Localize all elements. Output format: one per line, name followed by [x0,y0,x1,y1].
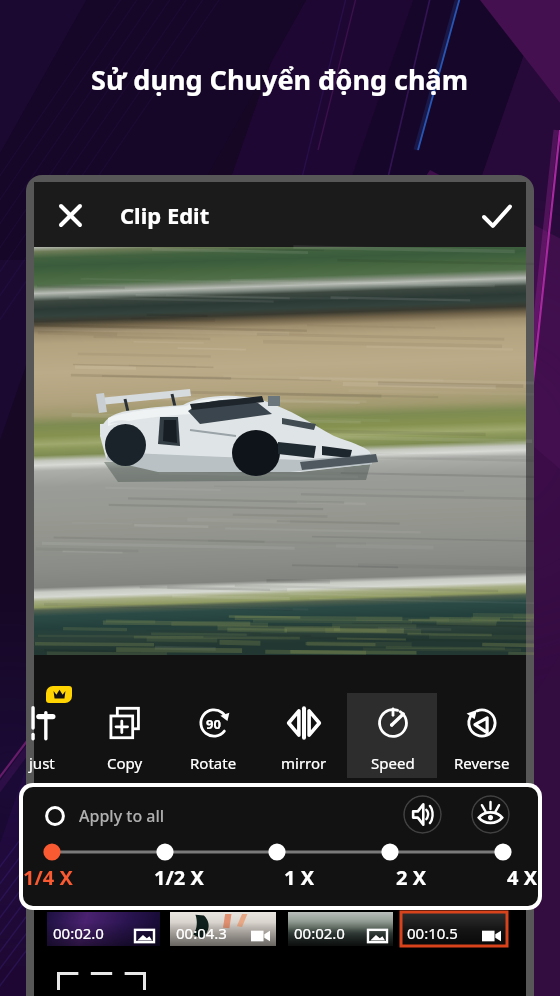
staticText: mirror [281,753,327,773]
staticText: Apply to all [79,805,165,827]
staticText: 00:04.3 [176,923,227,943]
button[interactable]: Speed [347,693,438,778]
button[interactable]: 00:02.0 [288,912,393,946]
staticText: Clip Edit [120,200,210,230]
staticText: Copy [107,753,143,773]
button[interactable]: mirror [258,693,349,778]
staticText: Rotate [190,753,237,773]
staticText: 4 X [507,864,538,891]
button[interactable]: Preview [471,795,510,834]
button[interactable]: 00:04.3 [170,912,276,946]
staticText: 00:02.0 [294,923,345,943]
button[interactable]: 00:10.5 [401,912,507,946]
staticText: 1 X [284,864,315,891]
button[interactable]: just [26,693,87,778]
button[interactable]: Copy [79,693,170,778]
staticText: 90 [206,715,221,733]
staticText: 1/4 X [23,864,73,891]
staticText: 00:02.0 [53,923,104,943]
staticText: 00:10.5 [407,923,458,943]
button[interactable]: Volume [403,795,442,834]
button[interactable]: 90 [168,693,259,778]
staticText: 2 X [396,864,427,891]
button[interactable]: 00:02.0 [47,912,160,946]
button[interactable]: Confirm [468,188,526,246]
staticText: Speed [371,753,415,773]
button[interactable]: Apply to all [45,801,165,831]
staticText: 1/2 X [154,864,204,891]
button[interactable]: Reverse [436,693,527,778]
button[interactable]: Close [44,189,96,241]
staticText: Reverse [454,753,510,773]
staticText: Sử dụng Chuyển động chậm [91,61,469,98]
staticText: just [29,753,55,773]
